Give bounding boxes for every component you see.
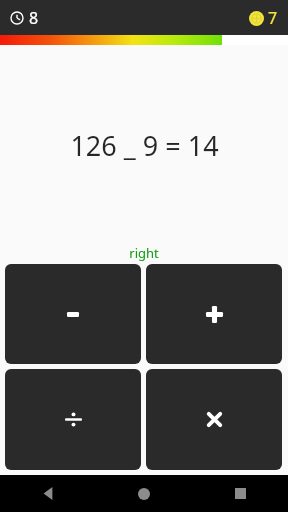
staticText: right — [129, 244, 159, 262]
staticText: 7 — [268, 7, 278, 29]
button[interactable]: Back — [0, 475, 96, 512]
staticText: 126 _ 9 = 14 — [70, 127, 219, 164]
button[interactable]: Multiply — [146, 369, 282, 470]
button[interactable]: Minus — [5, 264, 141, 364]
staticText: 8 — [29, 7, 39, 29]
button[interactable]: Divide — [5, 369, 141, 470]
button[interactable]: Plus — [146, 264, 282, 364]
button[interactable]: Recent apps — [192, 475, 288, 512]
button[interactable]: Home — [96, 475, 192, 512]
